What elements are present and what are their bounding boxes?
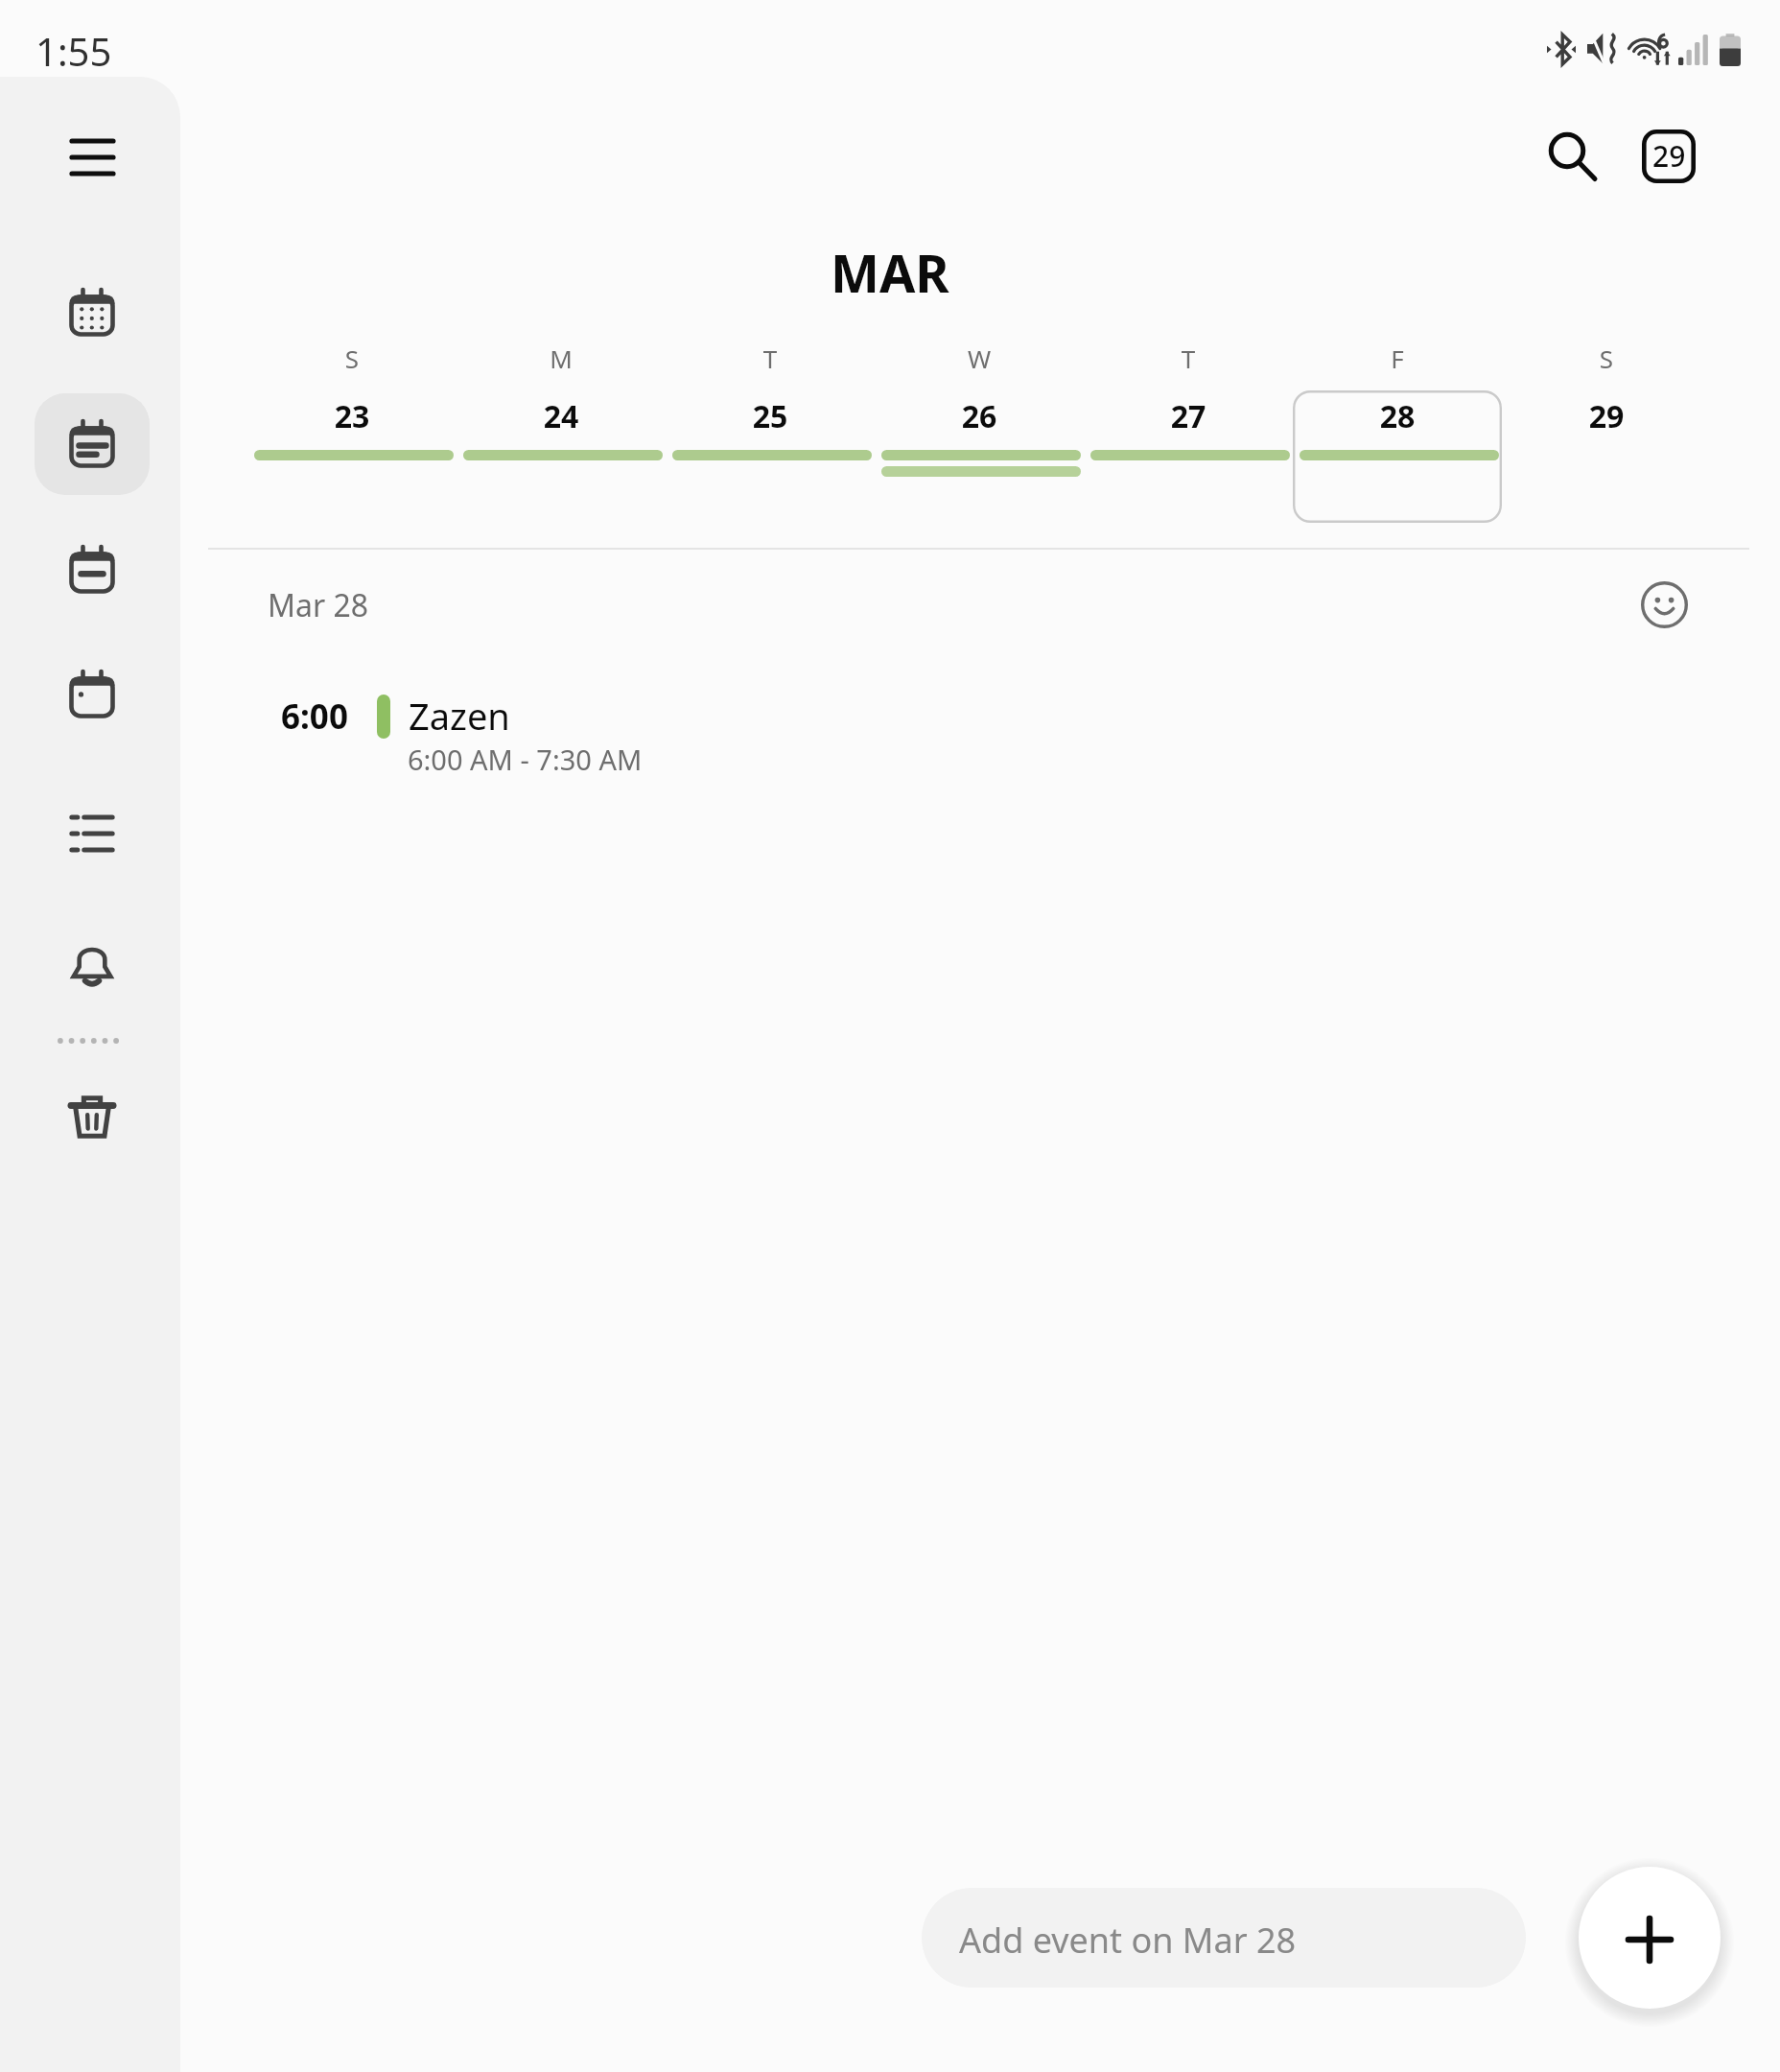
staticText: 6:00 AM - 7:30 AM xyxy=(408,741,643,778)
staticText: Zazen xyxy=(409,691,510,741)
button[interactable]: F xyxy=(1293,326,1502,547)
button[interactable]: Reminders xyxy=(35,913,150,1015)
button[interactable]: Add event on Mar 28 xyxy=(922,1888,1526,1988)
button[interactable]: T xyxy=(666,326,875,547)
staticText: W xyxy=(875,341,1084,375)
button[interactable]: Schedule view xyxy=(35,393,150,495)
staticText: 27 xyxy=(1084,395,1293,437)
staticText: Mar 28 xyxy=(268,584,369,626)
button[interactable]: Trash xyxy=(35,1066,150,1167)
staticText: T xyxy=(666,341,875,375)
staticText: 29 xyxy=(1502,395,1711,437)
button[interactable]: T xyxy=(1084,326,1293,547)
button[interactable]: M xyxy=(457,326,666,547)
button[interactable]: Task list xyxy=(35,783,150,884)
staticText: 23 xyxy=(247,395,457,437)
button[interactable]: 6:00 xyxy=(230,671,1592,796)
staticText: F xyxy=(1293,341,1502,375)
staticText: 6:00 xyxy=(281,694,348,740)
button[interactable]: Search xyxy=(1519,103,1627,210)
staticText: 28 xyxy=(1293,395,1502,437)
button[interactable]: S xyxy=(247,326,457,547)
staticText: S xyxy=(1502,341,1711,375)
staticText: T xyxy=(1084,341,1293,375)
staticText: Add event on Mar 28 xyxy=(959,1917,1297,1964)
staticText: 29 xyxy=(1652,136,1686,176)
button[interactable]: Mood xyxy=(1612,553,1716,656)
button[interactable]: Menu xyxy=(35,106,150,208)
staticText: S xyxy=(247,341,457,375)
staticText: MAR xyxy=(831,237,949,308)
button[interactable]: Go to today xyxy=(1615,103,1722,210)
button[interactable]: Month view xyxy=(35,262,150,364)
button[interactable]: 3 day view xyxy=(35,644,150,745)
staticText: 1:55 xyxy=(35,25,112,77)
staticText: 25 xyxy=(666,395,875,437)
button[interactable]: Day view xyxy=(35,519,150,621)
button[interactable]: W xyxy=(875,326,1084,547)
button[interactable]: Add event xyxy=(1579,1867,1721,2009)
staticText: M xyxy=(457,341,666,375)
staticText: 24 xyxy=(457,395,666,437)
staticText: 26 xyxy=(875,395,1084,437)
button[interactable]: S xyxy=(1502,326,1711,547)
